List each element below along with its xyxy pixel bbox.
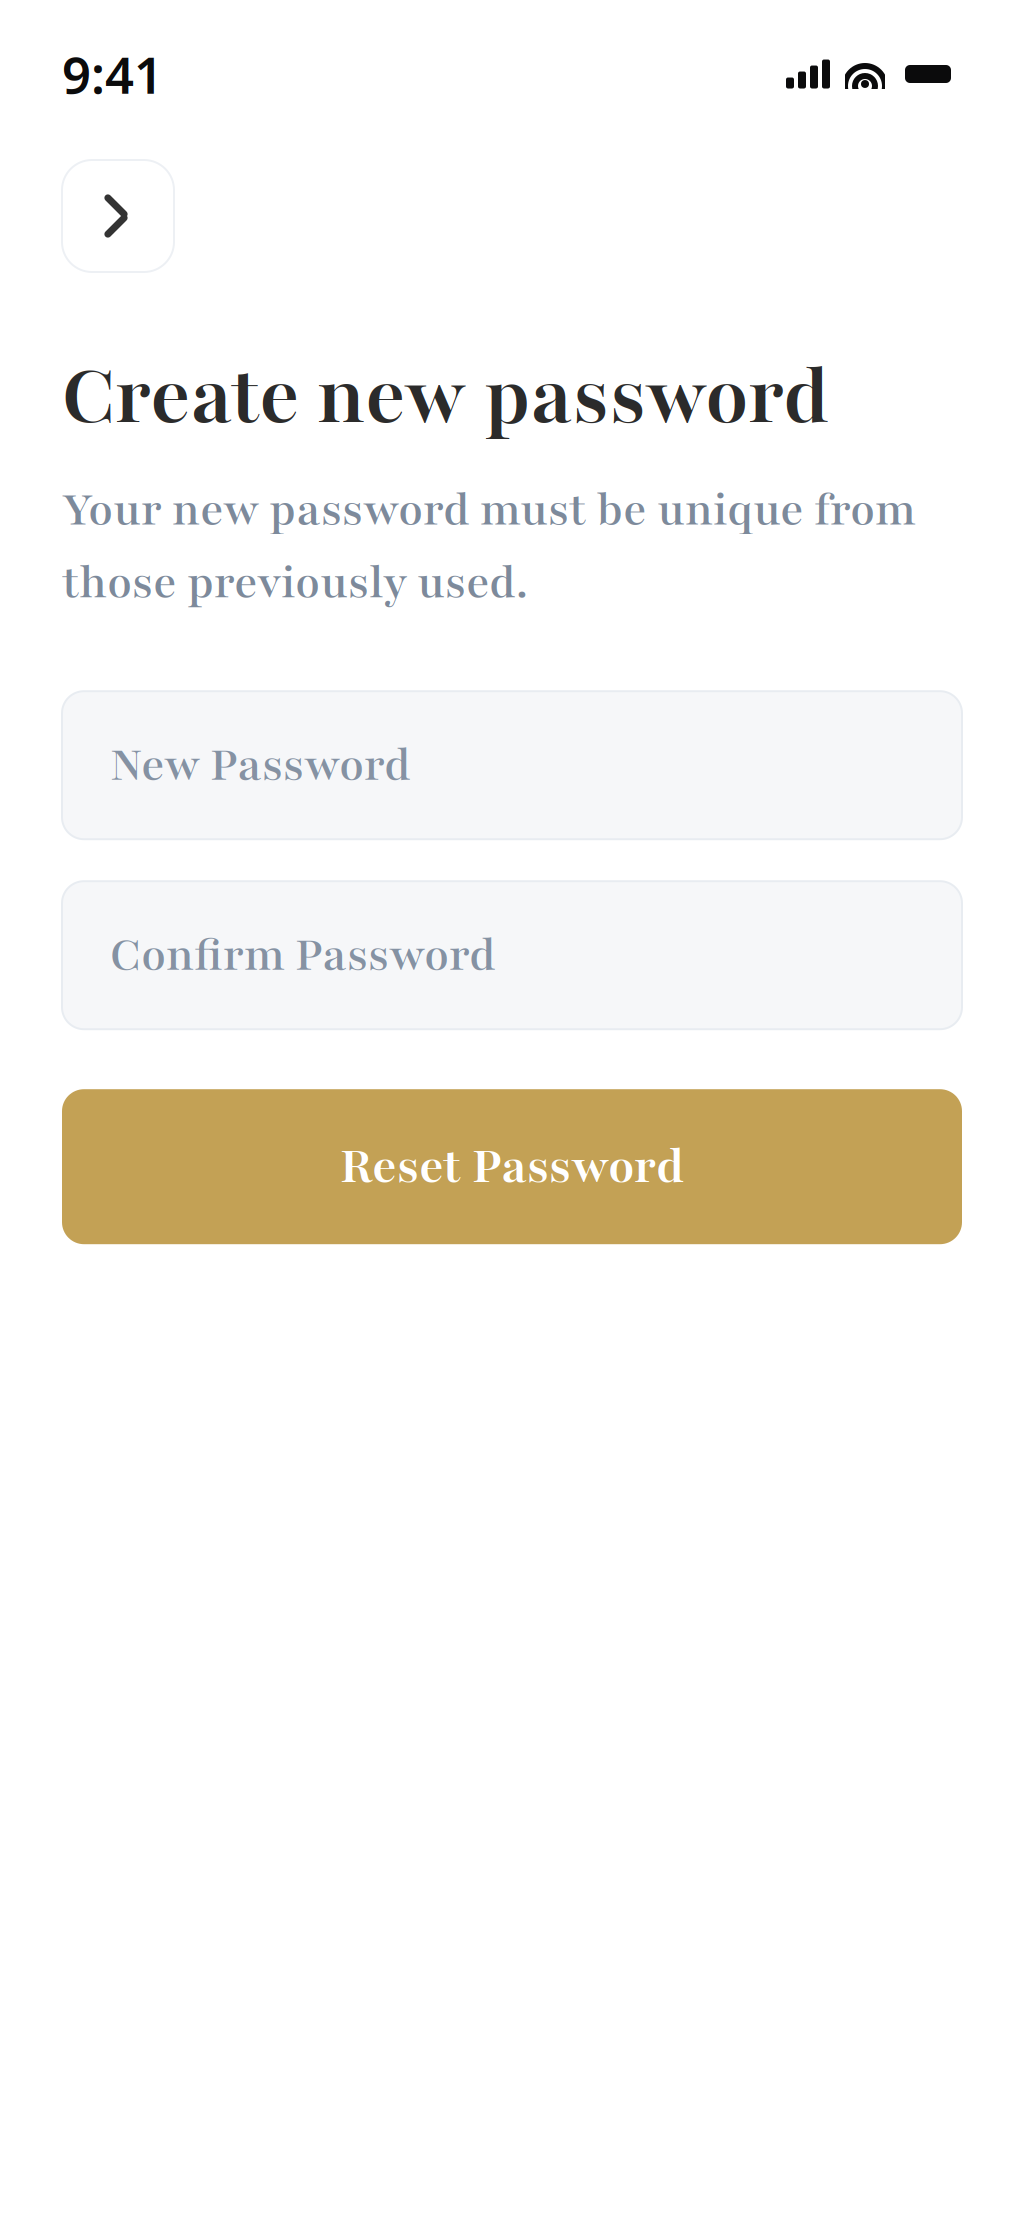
staticText: New Password	[110, 735, 411, 796]
staticText: Create new password	[62, 344, 829, 450]
staticText: Your new password must be unique from th…	[62, 480, 916, 613]
button[interactable]: Reset Password	[62, 1089, 962, 1244]
staticText: Confirm Password	[110, 925, 496, 986]
staticText: 9:41	[62, 40, 163, 108]
staticText: Reset Password	[340, 1135, 684, 1199]
button[interactable]: Back	[62, 160, 174, 272]
